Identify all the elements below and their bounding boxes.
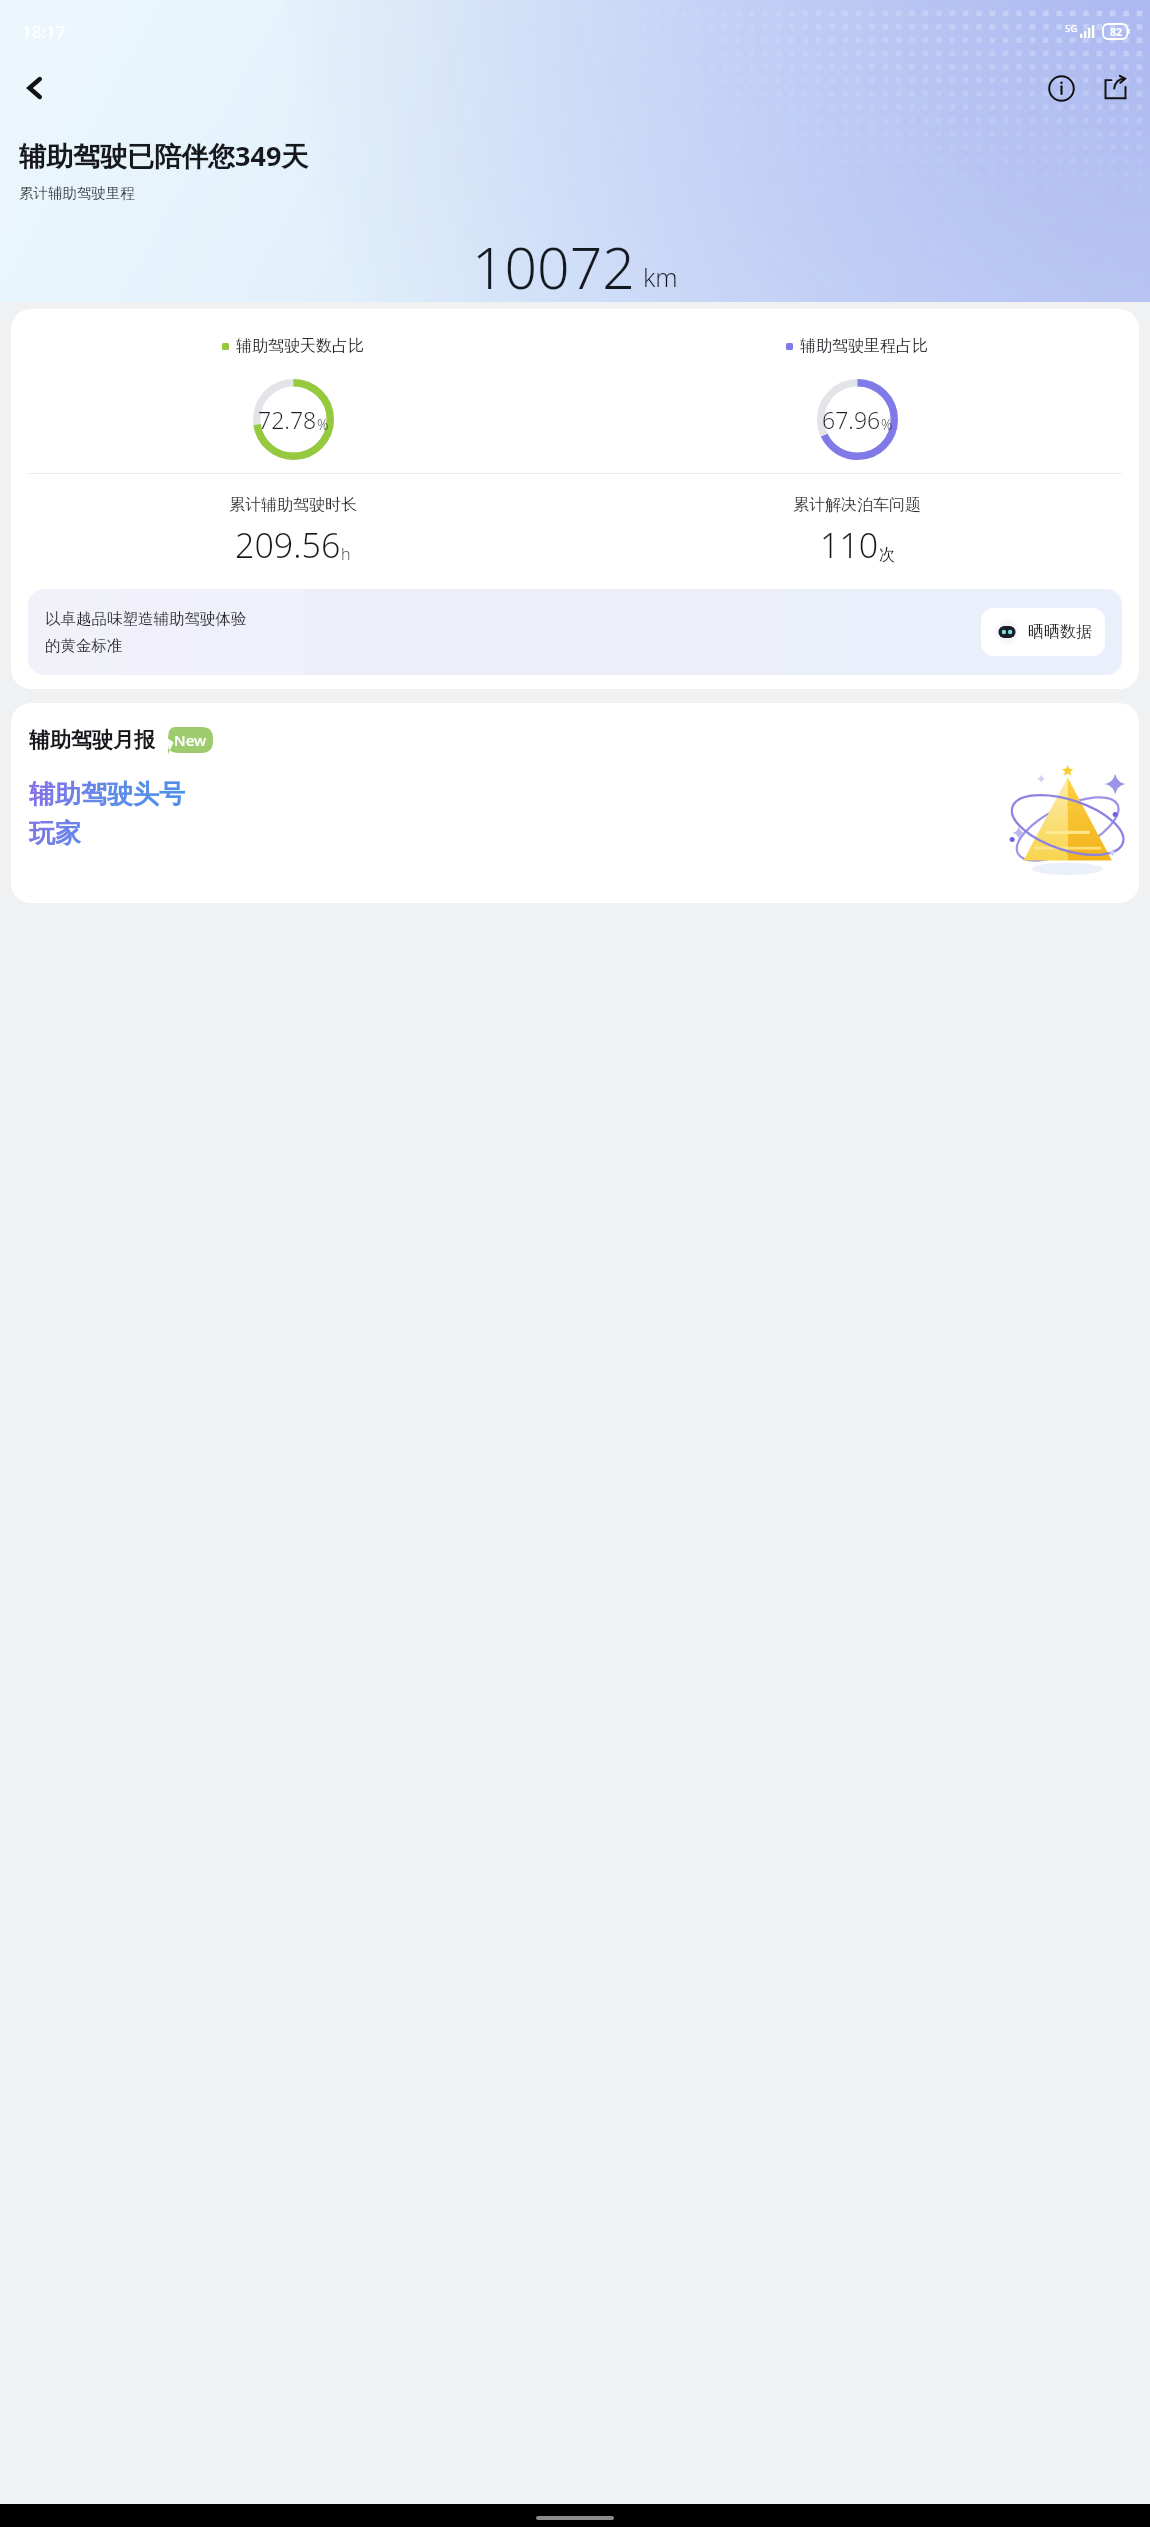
staticText: 82 (1110, 25, 1123, 39)
staticText: 209.56 (235, 522, 341, 568)
button[interactable]: Info (1039, 66, 1083, 110)
staticText: 累计辅助驾驶里程 (19, 184, 135, 202)
staticText: 晒晒数据 (1028, 622, 1092, 642)
staticText: 辅助驾驶头号 玩家 (29, 778, 185, 850)
staticText: % (317, 415, 329, 434)
staticText: New (174, 730, 207, 750)
staticText: 72.78 (258, 404, 317, 435)
staticText: 辅助驾驶已陪伴您349天 (19, 137, 309, 174)
staticText: 以卓越品味塑造辅助驾驶体验 的黄金标准 (45, 609, 973, 656)
staticText: 18:17 (22, 20, 66, 43)
staticText: km (643, 260, 678, 294)
staticText: 辅助驾驶月报 (29, 727, 155, 753)
staticText: 辅助驾驶天数占比 (236, 336, 364, 356)
button[interactable]: 辅助驾驶月报 (11, 703, 1139, 903)
button[interactable]: Back (12, 65, 58, 111)
staticText: 次 (879, 545, 895, 565)
staticText: 67.96 (822, 404, 881, 435)
button[interactable]: 晒晒数据 (981, 608, 1105, 656)
button[interactable]: Share (1093, 66, 1137, 110)
staticText: % (881, 415, 893, 434)
staticText: 110 (820, 522, 879, 568)
staticText: 累计解决泊车问题 (793, 495, 921, 515)
staticText: 5G (1065, 22, 1078, 35)
staticText: 10072 (472, 228, 635, 302)
staticText: 累计辅助驾驶时长 (229, 495, 357, 515)
staticText: h (341, 543, 351, 565)
staticText: 辅助驾驶里程占比 (800, 336, 928, 356)
